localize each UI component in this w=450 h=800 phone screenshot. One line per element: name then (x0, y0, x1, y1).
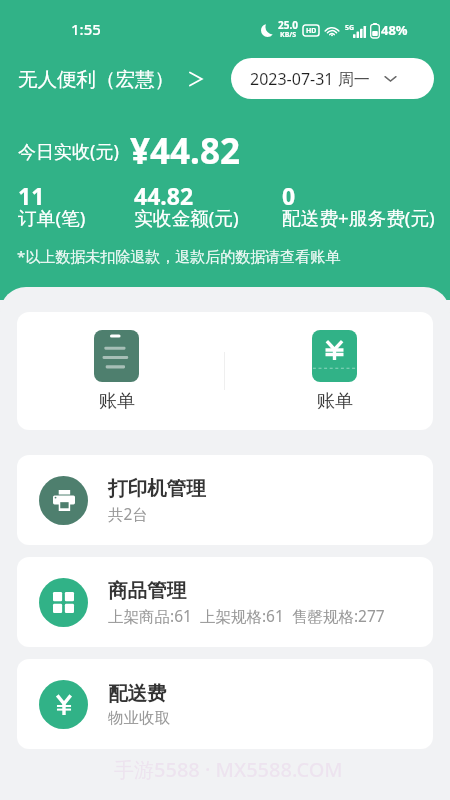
staticText: 48% (381, 21, 408, 39)
button[interactable]: 账单 (64, 312, 169, 430)
staticText: 今日实收(元) (18, 139, 119, 164)
staticText: 2023-07-31 周一 (250, 68, 370, 90)
button[interactable]: 商品管理 (17, 557, 433, 647)
button[interactable]: 2023-07-31 周一 (231, 58, 434, 99)
staticText: 配送费+服务费(元) (282, 205, 435, 231)
staticText: *以上数据未扣除退款，退款后的数据请查看账单 (17, 246, 341, 266)
staticText: 手游5588 · MX5588.COM (114, 756, 343, 783)
staticText: 账单 (317, 390, 353, 413)
staticText: 无人便利（宏慧） (18, 67, 174, 92)
staticText: 上架商品:61 上架规格:61 售罄规格:277 (108, 605, 385, 626)
staticText: KB/S (280, 30, 297, 40)
button[interactable]: 无人便利（宏慧） (18, 62, 204, 96)
staticText: 配送费 (108, 681, 167, 706)
staticText: 44.82 (134, 180, 194, 211)
button[interactable]: 打印机管理 (17, 455, 433, 545)
staticText: 订单(笔) (18, 205, 86, 231)
button[interactable]: 账单 (282, 312, 387, 430)
staticText: 25.0 (278, 18, 298, 32)
staticText: 实收金额(元) (134, 205, 239, 231)
staticText: ¥44.82 (130, 127, 240, 175)
staticText: 打印机管理 (108, 476, 206, 501)
staticText: 共2台 (108, 503, 148, 524)
staticText: HD (306, 26, 317, 36)
staticText: 商品管理 (108, 578, 186, 603)
staticText: 5G (345, 23, 355, 33)
staticText: 物业收取 (108, 708, 170, 728)
staticText: 1:55 (71, 19, 101, 39)
staticText: 0 (282, 180, 296, 211)
button[interactable]: 配送费 (17, 659, 433, 749)
staticText: 账单 (99, 390, 135, 413)
staticText: 11 (18, 180, 45, 211)
